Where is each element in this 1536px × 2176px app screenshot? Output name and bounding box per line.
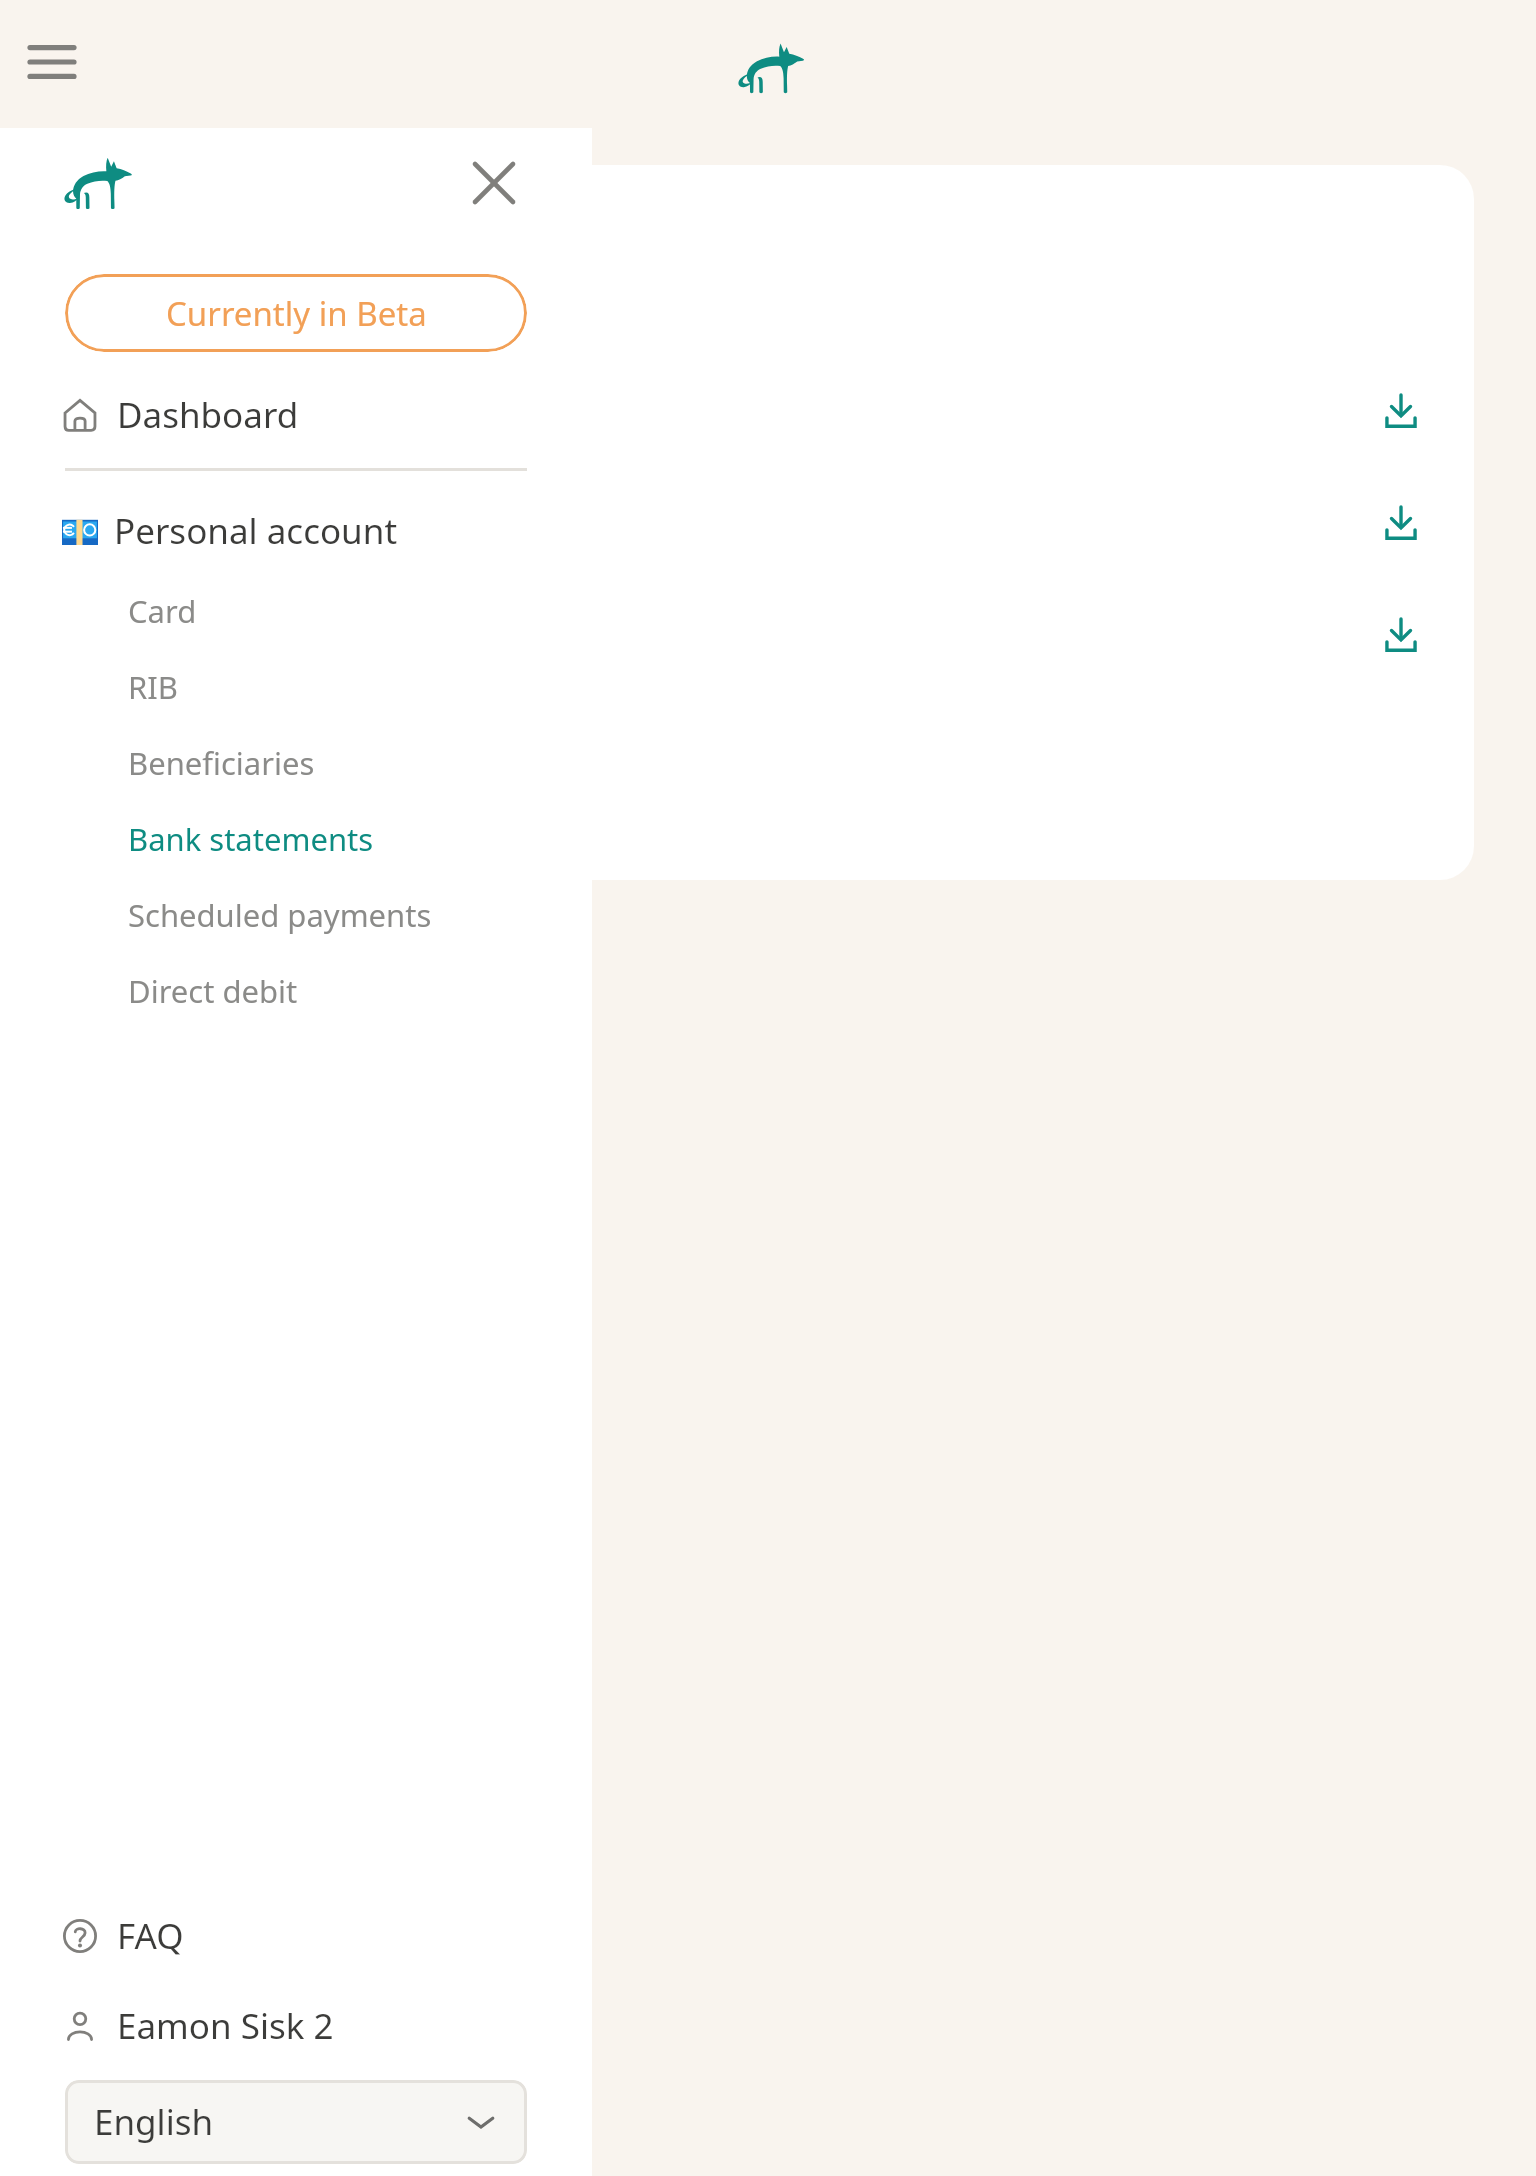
button[interactable]: Beneficiaries — [0, 725, 592, 801]
button[interactable]: Download statement — [1366, 488, 1436, 558]
button[interactable]: Open navigation menu — [22, 38, 82, 86]
button[interactable]: Scheduled payments — [0, 877, 592, 953]
staticText: Personal account — [114, 507, 398, 555]
button[interactable]: Close navigation menu — [464, 153, 524, 213]
staticText: Beneficiaries — [128, 742, 315, 784]
button[interactable]: Currently in Beta — [65, 274, 527, 352]
staticText: Currently in Beta — [166, 291, 427, 336]
staticText: English — [94, 2098, 214, 2146]
staticText: Dashboard — [117, 391, 299, 439]
button[interactable]: Personal account — [0, 501, 592, 561]
button[interactable]: Card — [0, 573, 592, 649]
staticText: Bank statements — [128, 818, 374, 860]
staticText: Direct debit — [128, 970, 298, 1012]
button[interactable]: Download statement — [1366, 376, 1436, 446]
button[interactable]: Direct debit — [0, 953, 592, 1029]
button[interactable]: FAQ — [0, 1898, 592, 1974]
button[interactable]: Eamon Sisk 2 — [0, 1988, 592, 2064]
staticText: Scheduled payments — [128, 894, 432, 936]
staticText: Eamon Sisk 2 — [117, 2002, 334, 2050]
button[interactable]: RIB — [0, 649, 592, 725]
button[interactable]: Download statement — [1366, 600, 1436, 670]
staticText: RIB — [128, 666, 178, 708]
staticText: FAQ — [117, 1912, 184, 1960]
button[interactable]: English — [65, 2080, 527, 2164]
button[interactable]: Bank statements — [0, 801, 592, 877]
button[interactable]: Dashboard — [0, 384, 592, 446]
staticText: Card — [128, 590, 197, 632]
